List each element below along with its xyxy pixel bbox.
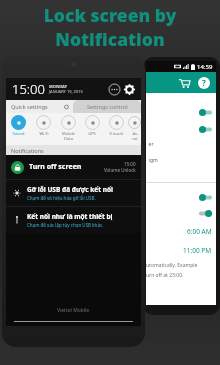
staticText: Wi-Fi [39,131,49,136]
button[interactable]: Settings control [73,100,141,113]
staticText: Kết nối như là một thiết bị media () [27,212,134,221]
staticText: Au rot [132,131,138,141]
button[interactable]: Quick settings [6,100,73,113]
staticText: 11:00 PM [183,246,212,255]
button[interactable]: Toggle [146,194,216,201]
button[interactable]: GPS [80,115,104,136]
staticText: JANUARY 19, 2015 [49,89,83,94]
button[interactable]: Wi-Fi [31,115,56,136]
staticText: 15:00 [124,161,136,167]
staticText: er [146,141,154,148]
staticText: Volume Unlock [104,167,136,173]
button[interactable]: Toggle [146,126,216,133]
staticText: Turn off screen [29,162,82,172]
staticText: ? [202,77,206,88]
button[interactable]: Kết nối như là một thiết bị media () [6,207,141,233]
staticText: Gỡ lỗi USB đã được kết nối [27,185,113,194]
button[interactable]: Toggle [146,109,216,116]
staticText: Notifications [11,147,44,154]
button[interactable]: V touch [104,115,128,136]
staticText: Mobile Data [62,131,75,141]
button[interactable]: Au rot [128,115,141,141]
staticText: V touch [109,131,124,136]
staticText: 6:00 AM [187,227,212,236]
button[interactable]: Toggle [146,210,216,217]
staticText: Chạm để xác lập tùy chọn USB khác. [27,222,104,228]
staticText: Sound [12,131,25,136]
button[interactable]: More [108,83,120,95]
staticText: urn off at 23:00. [146,272,184,279]
staticText: Quick settings [11,103,48,110]
staticText: MONDAY [49,84,68,89]
button[interactable]: Cart [176,75,192,91]
button[interactable]: Settings [123,83,135,95]
staticText: Settings control [87,103,128,110]
button[interactable]: Mobile Data [56,115,80,141]
staticText: Viettel Mobile [57,307,90,314]
staticText: GPS [88,131,96,136]
button[interactable]: Help [196,75,211,90]
staticText: Chạm để vô hiệu hóa gỡ lỗi USB. [27,195,96,201]
button[interactable]: Turn off screen [6,155,141,179]
staticText: 14:59 [197,63,213,71]
staticText: 15:00 [12,80,45,98]
staticText: Lock screen by Notification [0,3,220,51]
button[interactable]: Gỡ lỗi USB đã được kết nối [6,180,141,206]
staticText: utomatically. Example [146,262,198,269]
button[interactable]: Sound [6,115,31,136]
staticText: igm [146,157,158,164]
